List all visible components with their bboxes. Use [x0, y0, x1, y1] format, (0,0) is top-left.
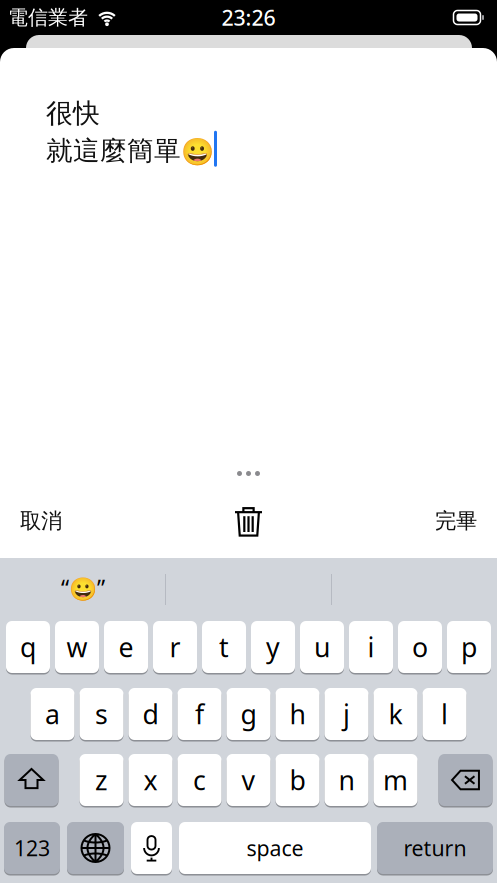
staticText: space — [246, 834, 303, 862]
button[interactable]: z — [79, 754, 123, 806]
button[interactable]: Shift — [4, 754, 58, 806]
staticText: r — [169, 629, 180, 665]
staticText: z — [95, 762, 108, 798]
staticText: p — [461, 629, 477, 665]
button[interactable]: f — [177, 688, 221, 740]
button[interactable]: o — [398, 621, 442, 673]
button[interactable]: Dictate — [131, 822, 172, 874]
button[interactable]: p — [447, 621, 491, 673]
button[interactable]: Next keyboard — [67, 822, 124, 874]
button[interactable]: 完畢 — [357, 496, 497, 546]
staticText: “😀” — [61, 573, 105, 603]
staticText: 23:26 — [221, 3, 275, 32]
button[interactable]: space — [179, 822, 371, 874]
button[interactable]: return — [377, 822, 493, 874]
button[interactable]: v — [226, 754, 270, 806]
staticText: return — [403, 834, 466, 862]
staticText: y — [266, 629, 280, 665]
button[interactable]: q — [6, 621, 50, 673]
staticText: a — [45, 696, 60, 732]
staticText: c — [193, 762, 206, 798]
staticText: k — [388, 696, 402, 732]
button[interactable]: u — [300, 621, 344, 673]
button[interactable]: d — [128, 688, 172, 740]
button[interactable]: x — [128, 754, 172, 806]
button[interactable]: t — [202, 621, 246, 673]
button[interactable]: 123 — [4, 822, 60, 874]
button[interactable]: b — [275, 754, 319, 806]
button[interactable]: h — [275, 688, 319, 740]
button[interactable]: n — [324, 754, 368, 806]
button[interactable]: c — [177, 754, 221, 806]
staticText: n — [338, 762, 354, 798]
staticText: 完畢 — [435, 508, 477, 534]
button[interactable]: j — [324, 688, 368, 740]
button[interactable]: Delete — [438, 754, 492, 806]
staticText: j — [343, 696, 350, 732]
button[interactable]: 取消 — [0, 496, 140, 546]
staticText: u — [314, 629, 330, 665]
button[interactable]: m — [373, 754, 417, 806]
button[interactable]: y — [251, 621, 295, 673]
button[interactable]: i — [349, 621, 393, 673]
staticText: x — [143, 762, 157, 798]
button[interactable]: r — [153, 621, 197, 673]
staticText: m — [383, 762, 408, 798]
staticText: 就這麼簡單😀 — [46, 134, 214, 167]
button[interactable]: a — [30, 688, 74, 740]
staticText: 電信業者 — [8, 5, 88, 30]
button[interactable]: k — [373, 688, 417, 740]
staticText: f — [195, 696, 204, 732]
staticText: 取消 — [20, 508, 62, 534]
staticText: b — [289, 762, 305, 798]
staticText: s — [95, 696, 108, 732]
staticText: q — [20, 629, 36, 665]
button[interactable]: l — [422, 688, 466, 740]
staticText: l — [441, 696, 448, 732]
button[interactable]: w — [55, 621, 99, 673]
staticText: d — [142, 696, 158, 732]
staticText: o — [412, 629, 428, 665]
button[interactable]: g — [226, 688, 270, 740]
staticText: e — [118, 629, 133, 665]
staticText: v — [241, 762, 255, 798]
button[interactable]: e — [104, 621, 148, 673]
button[interactable]: s — [79, 688, 123, 740]
staticText: h — [289, 696, 305, 732]
staticText: 123 — [14, 834, 50, 862]
staticText: i — [367, 629, 374, 665]
staticText: t — [219, 629, 229, 665]
button[interactable]: Delete — [217, 496, 279, 546]
staticText: 很快 — [46, 97, 100, 130]
staticText: w — [66, 629, 87, 665]
staticText: g — [240, 696, 256, 732]
